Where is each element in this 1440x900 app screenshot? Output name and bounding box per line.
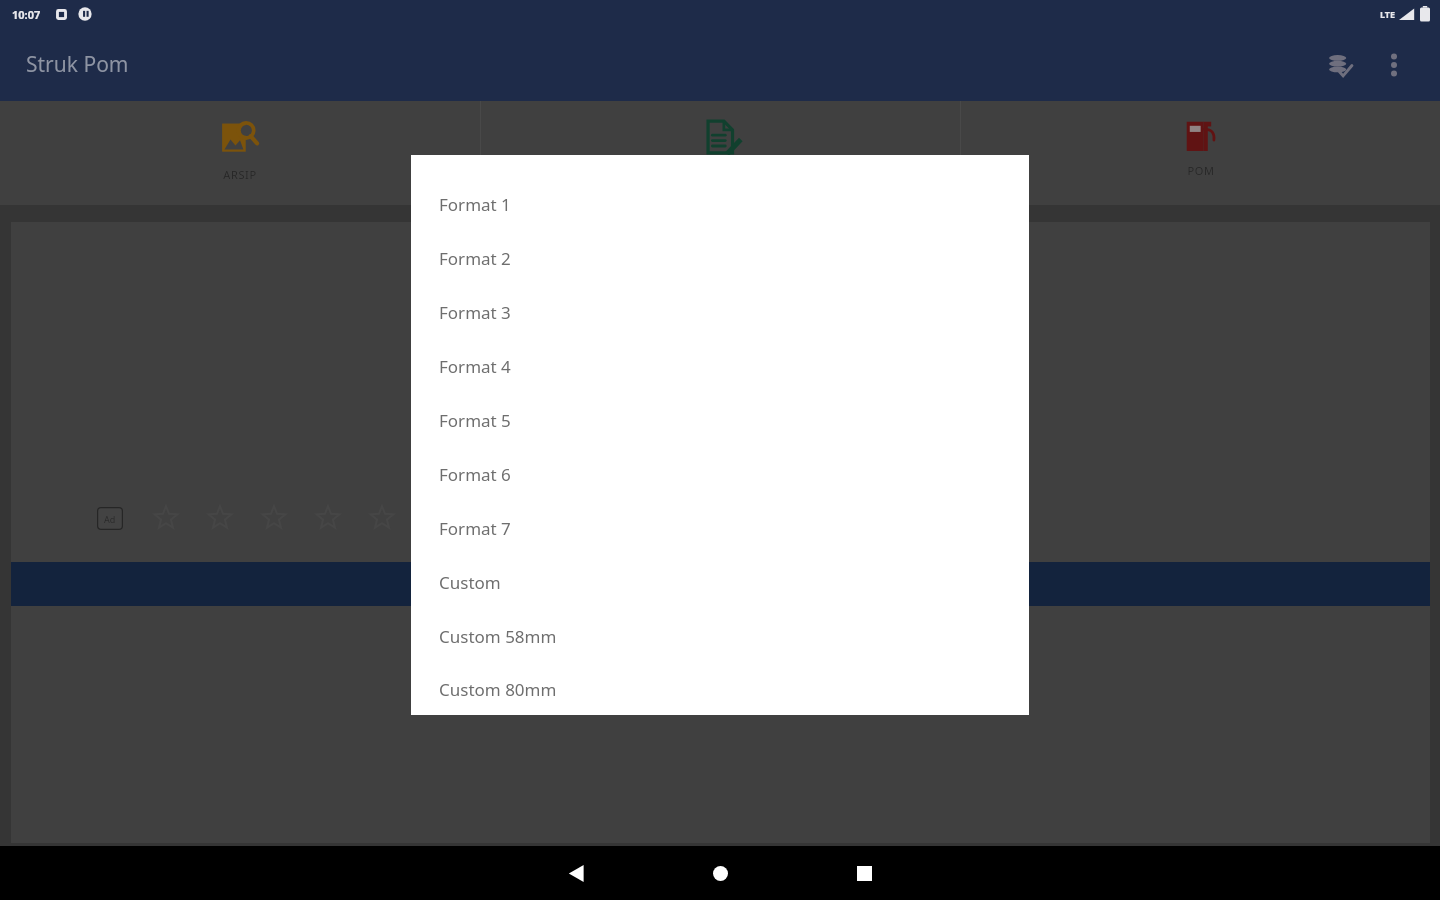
staticText: Format 6 [439, 463, 511, 486]
staticText: Format 7 [439, 517, 511, 540]
staticText: Format 1 [439, 193, 511, 216]
staticText: Format 5 [439, 409, 511, 432]
button[interactable]: Custom 80mm [411, 663, 1029, 715]
staticText: Format 4 [439, 355, 511, 378]
button[interactable]: Format 5 [411, 393, 1029, 447]
button[interactable]: More options [1370, 41, 1418, 89]
button[interactable]: Format 2 [411, 231, 1029, 285]
staticText: Custom 58mm [439, 625, 557, 648]
staticText: Struk Pom [26, 50, 129, 79]
button[interactable] [481, 101, 960, 205]
button[interactable]: Format 1 [411, 177, 1029, 231]
staticText: 10:07 [12, 7, 41, 22]
button[interactable]: Format 7 [411, 501, 1029, 555]
button[interactable]: Home [660, 846, 780, 900]
button[interactable]: Back [516, 846, 636, 900]
staticText: Custom 80mm [439, 678, 557, 701]
button[interactable]: Custom 58mm [411, 609, 1029, 663]
button[interactable]: Custom [411, 555, 1029, 609]
staticText: Format 3 [439, 301, 511, 324]
button[interactable]: Format 6 [411, 447, 1029, 501]
button[interactable]: Format 3 [411, 285, 1029, 339]
staticText: Ad [104, 513, 116, 525]
staticText: Format 2 [439, 247, 511, 270]
button[interactable]: Format 4 [411, 339, 1029, 393]
staticText: ARSIP [223, 167, 257, 182]
button[interactable]: Recent apps [804, 846, 924, 900]
staticText: POM [1187, 163, 1215, 178]
button[interactable]: Saved records [1316, 41, 1364, 89]
staticText: LTE [1380, 8, 1396, 20]
button[interactable]: ARSIP [0, 101, 480, 205]
button[interactable]: POM [961, 101, 1440, 205]
staticText: Custom [439, 571, 501, 594]
button[interactable]: Banner [11, 562, 1430, 606]
